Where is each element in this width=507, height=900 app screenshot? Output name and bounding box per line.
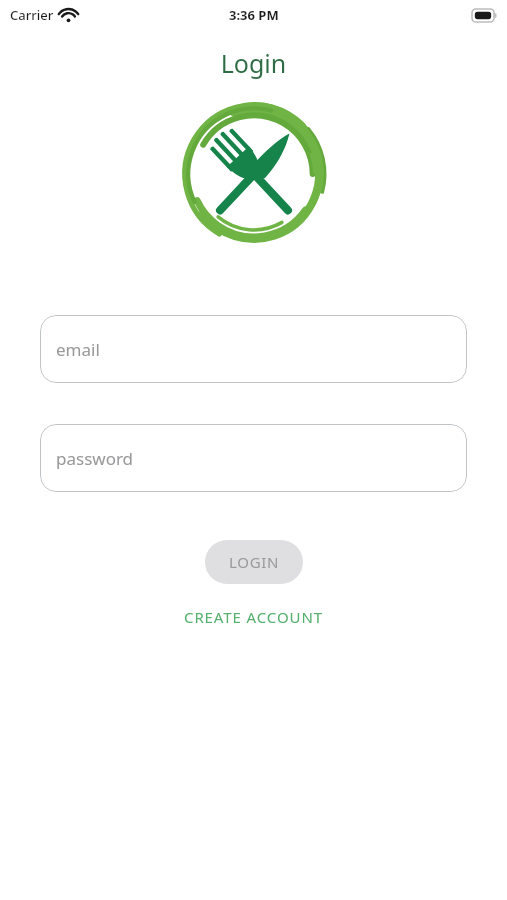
button[interactable]: email	[40, 315, 467, 383]
button[interactable]: password	[40, 424, 467, 492]
button[interactable]: LOGIN	[205, 540, 303, 584]
staticText: email	[56, 338, 100, 361]
staticText: Login	[0, 46, 507, 80]
staticText: Carrier	[10, 6, 54, 24]
staticText: CREATE ACCOUNT	[184, 607, 323, 627]
button[interactable]: CREATE ACCOUNT	[176, 603, 331, 631]
staticText: 3:36 PM	[229, 6, 279, 24]
staticText: password	[56, 447, 134, 470]
staticText: LOGIN	[229, 552, 280, 572]
